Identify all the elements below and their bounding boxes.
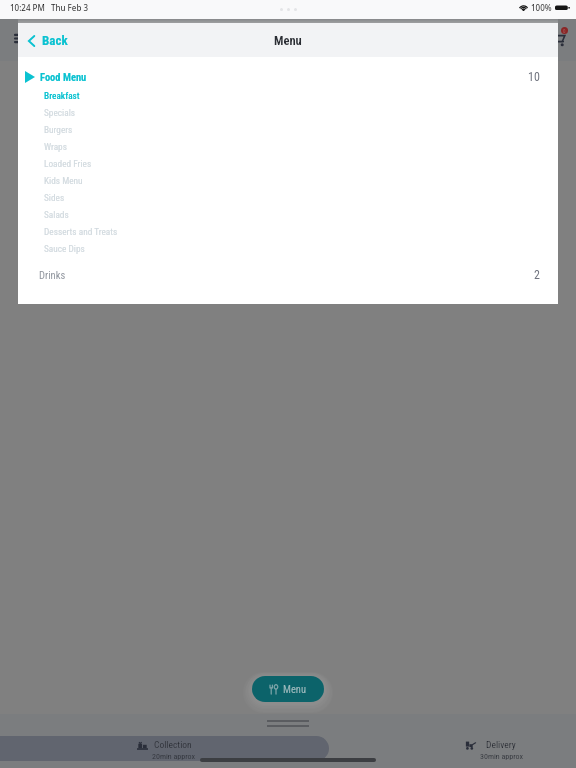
button[interactable]: Collection [137,739,183,761]
button[interactable]: Delivery [464,739,510,761]
button[interactable]: Desserts and Treats [18,223,558,240]
staticText: Drinks [39,269,66,281]
staticText: Breakfast [44,90,80,101]
staticText: Loaded Fries [44,158,92,169]
staticText: Sauce Dips [44,243,85,254]
button[interactable]: Specials [18,104,558,121]
staticText: Burgers [44,124,73,135]
staticText: Collection [154,739,192,750]
staticText: Sides [44,192,65,203]
button[interactable] [0,736,329,761]
button[interactable]: Sauce Dips [18,240,558,257]
staticText: 20min approx [152,752,195,761]
staticText: Thu Feb 3 [51,2,89,13]
staticText: Food Menu [40,71,87,83]
staticText: 10:24 PM [10,2,45,13]
staticText: Delivery [486,739,516,750]
button[interactable]: Burgers [18,121,558,138]
button[interactable]: Sides [18,189,558,206]
staticText: 2 [534,268,540,282]
staticText: Wraps [44,141,67,152]
button[interactable]: Wraps [18,138,558,155]
staticText: Menu [283,683,307,695]
button[interactable]: Food Menu [18,67,558,87]
button[interactable]: Back [28,33,68,48]
button[interactable]: Salads [18,206,558,223]
staticText: Desserts and Treats [44,226,118,237]
staticText: Specials [44,107,76,118]
button[interactable]: Loaded Fries [18,155,558,172]
staticText: 10 [528,70,540,84]
button[interactable]: Shopping cart [548,26,570,48]
button[interactable]: Open navigation menu [7,27,29,49]
staticText: Salads [44,209,69,220]
staticText: Kids Menu [44,175,83,186]
button[interactable]: Menu [252,676,324,702]
staticText: 0 [563,28,566,34]
staticText: 30min approx [480,752,523,761]
button[interactable]: Breakfast [18,87,558,104]
staticText: 100% [531,2,552,13]
staticText: Back [42,33,68,48]
button[interactable]: Drinks [18,265,558,285]
staticText: Menu [274,33,302,48]
button[interactable]: Kids Menu [18,172,558,189]
